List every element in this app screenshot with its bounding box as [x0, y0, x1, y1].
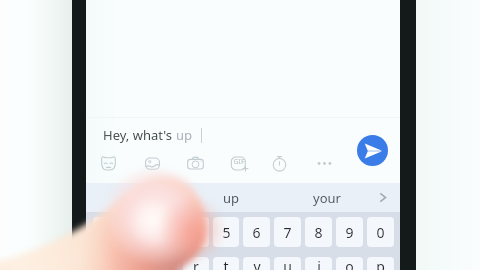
staticText: e — [162, 257, 170, 270]
button[interactable]: 3 — [153, 217, 179, 247]
staticText: w — [130, 257, 142, 270]
staticText: 5 — [222, 223, 231, 242]
button[interactable]: 9 — [336, 217, 363, 247]
button[interactable]: 5 — [213, 217, 239, 247]
button[interactable]: i — [305, 257, 332, 270]
button[interactable]: u — [274, 257, 301, 270]
staticText: 9 — [345, 223, 354, 242]
staticText: 0 — [376, 223, 385, 242]
staticText: i — [317, 257, 321, 270]
button[interactable]: 1 — [93, 217, 119, 247]
button[interactable]: 0 — [367, 217, 394, 247]
button[interactable]: More suggestions — [368, 183, 397, 212]
button[interactable]: p — [367, 257, 394, 270]
staticText: 1 — [102, 223, 111, 242]
button[interactable]: 4 — [183, 217, 209, 247]
button[interactable]: Gallery — [137, 149, 167, 177]
button[interactable]: GIF — [224, 149, 254, 177]
button[interactable]: w — [123, 257, 149, 270]
staticText: your — [313, 189, 341, 207]
button[interactable]: Camera — [180, 149, 210, 177]
staticText: 2 — [132, 223, 141, 242]
button[interactable]: 2 — [123, 217, 149, 247]
staticText: q — [102, 257, 111, 270]
button[interactable]: Stickers — [93, 149, 123, 177]
button[interactable]: t — [213, 257, 239, 270]
button[interactable]: e — [153, 257, 179, 270]
button[interactable]: your — [297, 183, 357, 212]
button[interactable]: q — [93, 257, 119, 270]
button[interactable]: Send — [357, 135, 388, 166]
staticText: 6 — [252, 223, 261, 242]
staticText: up — [176, 126, 193, 144]
button[interactable]: r — [183, 257, 209, 270]
button[interactable]: 8 — [305, 217, 332, 247]
staticText: y — [253, 257, 261, 270]
button[interactable]: 6 — [243, 217, 270, 247]
staticText: 4 — [192, 223, 201, 242]
staticText: Hey, what's — [103, 126, 176, 144]
staticText: 3 — [162, 223, 171, 242]
staticText: o — [345, 257, 354, 270]
button[interactable]: Timer — [264, 149, 294, 177]
staticText: u — [283, 257, 292, 270]
button[interactable]: y — [243, 257, 270, 270]
staticText: t — [223, 257, 229, 270]
staticText: r — [193, 257, 199, 270]
staticText: up — [223, 189, 240, 207]
button[interactable]: More options — [309, 149, 339, 177]
staticText: GIF — [233, 157, 245, 167]
staticText: 8 — [314, 223, 323, 242]
button[interactable]: 7 — [274, 217, 301, 247]
staticText: 7 — [283, 223, 292, 242]
button[interactable]: o — [336, 257, 363, 270]
staticText: p — [376, 257, 385, 270]
button[interactable]: up — [201, 183, 261, 212]
